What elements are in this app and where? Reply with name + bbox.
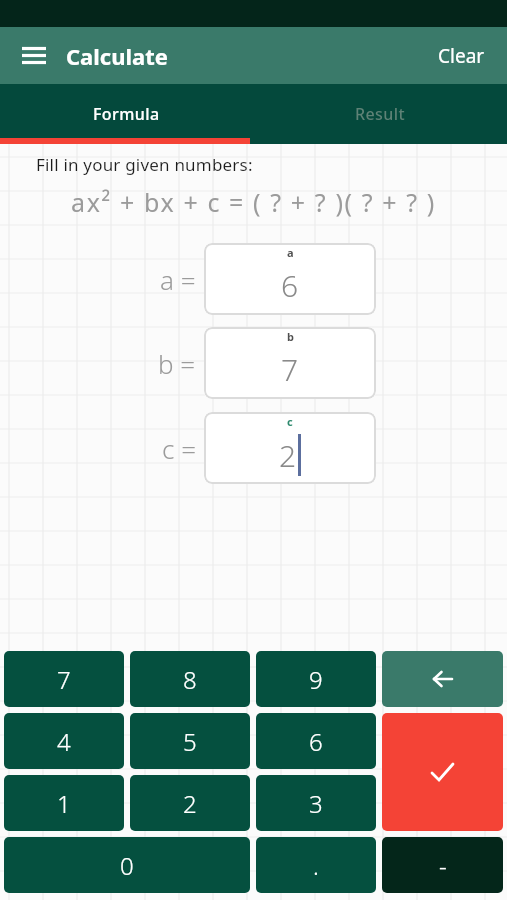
staticText: c [287, 414, 293, 429]
button[interactable]: 1 [4, 775, 124, 831]
button[interactable]: 7 [4, 651, 124, 707]
button[interactable]: Formula [0, 84, 253, 144]
button[interactable]: Result [253, 84, 507, 144]
staticText: Formula [93, 103, 160, 125]
staticText: 5 [183, 725, 197, 758]
staticText: 3 [309, 787, 323, 820]
staticText: Fill in your given numbers: [36, 153, 253, 176]
button[interactable]: 9 [256, 651, 376, 707]
button[interactable]: 4 [4, 713, 124, 769]
staticText: b = [158, 346, 196, 381]
button[interactable] [382, 713, 503, 831]
staticText: Clear [438, 43, 485, 68]
button[interactable]: b [204, 327, 376, 399]
button[interactable] [10, 32, 58, 80]
staticText: c = [162, 431, 196, 466]
staticText: 6 [281, 265, 299, 306]
button[interactable]: a [204, 243, 376, 315]
button[interactable]: Clear [416, 27, 507, 84]
staticText: 7 [281, 349, 299, 390]
staticText: 9 [309, 663, 323, 696]
button[interactable]: 0 [4, 837, 250, 893]
button[interactable]: 2 [130, 775, 250, 831]
button[interactable]: 5 [130, 713, 250, 769]
staticText: 6 [309, 725, 323, 758]
button[interactable]: 6 [256, 713, 376, 769]
staticText: 4 [57, 725, 71, 758]
staticText: 1 [57, 787, 71, 820]
staticText: a [287, 245, 294, 260]
staticText: a = [160, 262, 196, 297]
button[interactable]: c [204, 412, 376, 484]
button[interactable] [382, 651, 503, 707]
button[interactable]: - [382, 837, 503, 893]
staticText: Calculate [66, 41, 168, 71]
staticText: 8 [183, 663, 197, 696]
button[interactable]: . [256, 837, 376, 893]
staticText: b [287, 329, 294, 344]
button[interactable]: 3 [256, 775, 376, 831]
staticText: Result [355, 103, 405, 125]
staticText: 7 [57, 663, 71, 696]
staticText: 2 [183, 787, 197, 820]
staticText: - [439, 849, 447, 882]
staticText: . [313, 849, 319, 882]
staticText: 2 [279, 435, 297, 476]
button[interactable]: 8 [130, 651, 250, 707]
staticText: ax² + bx + c = ( ? + ? )( ? + ? ) [0, 185, 507, 219]
staticText: 0 [120, 849, 134, 882]
